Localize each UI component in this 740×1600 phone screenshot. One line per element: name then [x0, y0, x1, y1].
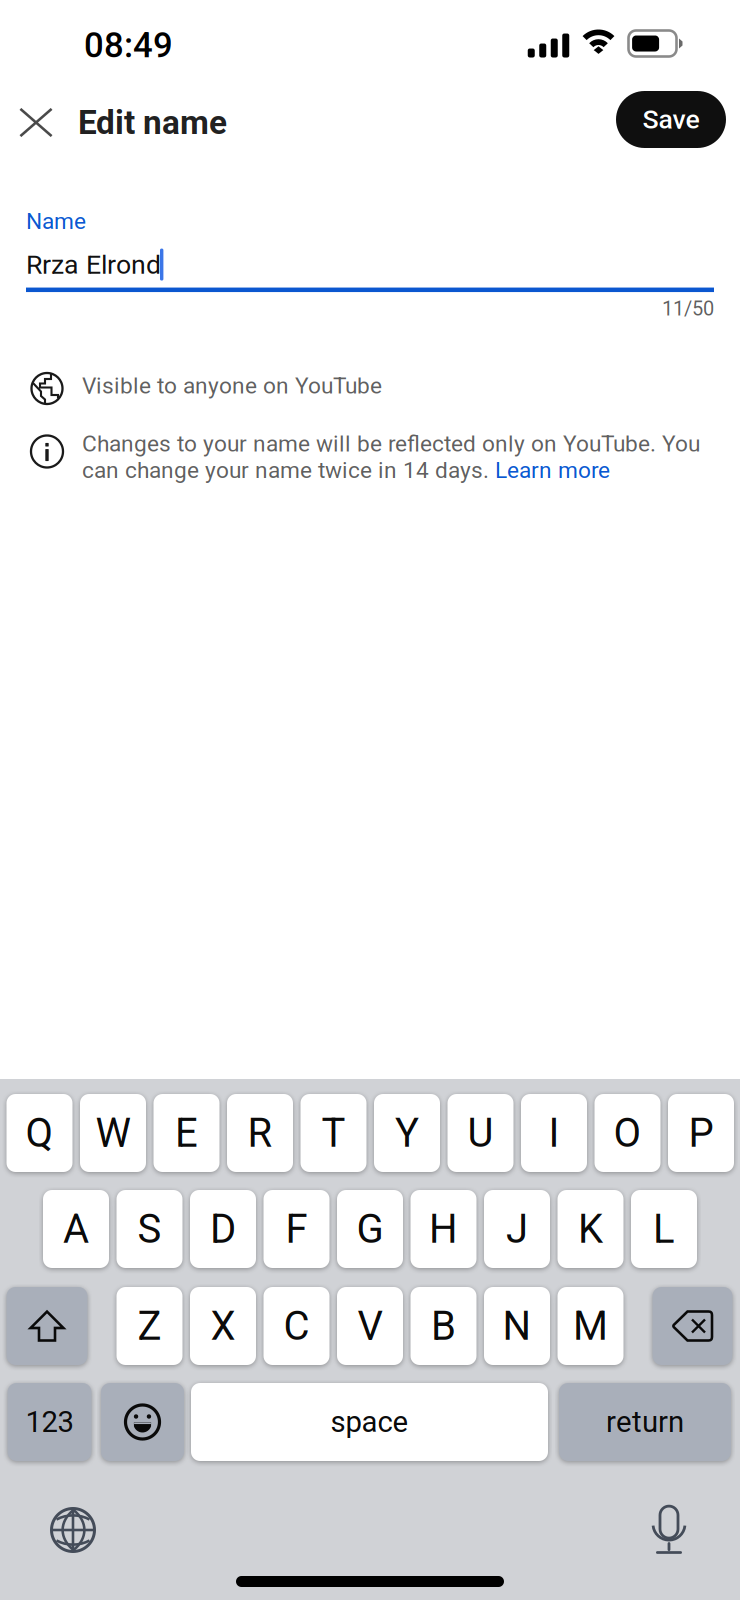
- staticText: space: [330, 1405, 408, 1439]
- staticText: B: [431, 1303, 456, 1349]
- staticText: V: [357, 1303, 382, 1349]
- button[interactable]: N: [484, 1287, 550, 1365]
- button[interactable]: H: [410, 1190, 476, 1268]
- staticText: S: [137, 1206, 161, 1252]
- staticText: C: [283, 1303, 309, 1349]
- button[interactable]: Y: [374, 1094, 440, 1172]
- staticText: K: [578, 1206, 603, 1252]
- button[interactable]: O: [594, 1094, 660, 1172]
- button[interactable]: Delete: [652, 1287, 732, 1365]
- button[interactable]: Close: [10, 91, 62, 153]
- staticText: A: [63, 1206, 89, 1252]
- button[interactable]: Emoji: [101, 1383, 184, 1461]
- staticText: X: [210, 1303, 235, 1349]
- staticText: Changes to your name will be reflected o…: [82, 430, 700, 457]
- staticText: Z: [137, 1303, 161, 1349]
- staticText: L: [653, 1206, 675, 1252]
- staticText: Edit name: [78, 103, 227, 142]
- button[interactable]: R: [227, 1094, 293, 1172]
- button[interactable]: A: [43, 1190, 109, 1268]
- button[interactable]: Dictate: [641, 1502, 697, 1558]
- button[interactable]: Save: [616, 94, 726, 151]
- staticText: Name: [26, 208, 86, 235]
- button[interactable]: I: [521, 1094, 587, 1172]
- staticText: F: [285, 1206, 307, 1252]
- button[interactable]: X: [190, 1287, 256, 1365]
- staticText: W: [95, 1110, 130, 1156]
- staticText: H: [429, 1206, 458, 1252]
- staticText: O: [613, 1110, 641, 1156]
- button[interactable]: return: [559, 1383, 731, 1461]
- button[interactable]: W: [80, 1094, 146, 1172]
- button[interactable]: U: [447, 1094, 513, 1172]
- staticText: R: [247, 1110, 272, 1156]
- button[interactable]: B: [410, 1287, 476, 1365]
- button[interactable]: G: [337, 1190, 403, 1268]
- button[interactable]: E: [153, 1094, 219, 1172]
- button[interactable]: Name: [26, 208, 714, 292]
- button[interactable]: Change keyboard: [45, 1502, 101, 1558]
- staticText: I: [548, 1110, 559, 1156]
- button[interactable]: P: [668, 1094, 734, 1172]
- staticText: Learn more: [495, 457, 610, 484]
- staticText: Rrza Elrond: [26, 249, 161, 280]
- staticText: Q: [25, 1110, 53, 1156]
- button[interactable]: M: [557, 1287, 623, 1365]
- staticText: Y: [395, 1110, 419, 1156]
- staticText: 123: [25, 1405, 73, 1439]
- button[interactable]: Shift: [6, 1287, 87, 1365]
- staticText: 08:49: [84, 25, 173, 66]
- staticText: N: [502, 1303, 531, 1349]
- staticText: G: [356, 1206, 383, 1252]
- button[interactable]: J: [484, 1190, 550, 1268]
- button[interactable]: Z: [116, 1287, 182, 1365]
- button[interactable]: S: [116, 1190, 182, 1268]
- button[interactable]: F: [263, 1190, 329, 1268]
- staticText: T: [321, 1110, 345, 1156]
- button[interactable]: Learn more: [495, 457, 610, 484]
- staticText: U: [467, 1110, 493, 1156]
- staticText: M: [573, 1303, 608, 1349]
- staticText: can change your name twice in 14 days.: [82, 457, 495, 484]
- button[interactable]: D: [190, 1190, 256, 1268]
- button[interactable]: 123: [7, 1383, 91, 1461]
- staticText: return: [606, 1405, 684, 1439]
- staticText: P: [688, 1110, 713, 1156]
- staticText: E: [175, 1110, 198, 1156]
- staticText: Save: [642, 104, 699, 135]
- staticText: J: [506, 1206, 528, 1252]
- button[interactable]: T: [300, 1094, 366, 1172]
- button[interactable]: L: [631, 1190, 697, 1268]
- button[interactable]: K: [557, 1190, 623, 1268]
- button[interactable]: space: [191, 1383, 548, 1461]
- button[interactable]: C: [263, 1287, 329, 1365]
- button[interactable]: Q: [6, 1094, 72, 1172]
- staticText: D: [210, 1206, 236, 1252]
- button[interactable]: V: [337, 1287, 403, 1365]
- staticText: Visible to anyone on YouTube: [82, 372, 382, 399]
- staticText: 11/50: [662, 297, 714, 320]
